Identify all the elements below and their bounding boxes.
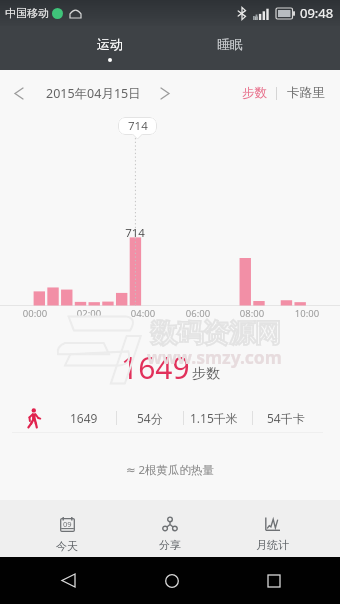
staticText: 714 — [128, 118, 148, 134]
staticText: 08:00 — [232, 307, 272, 320]
staticText: 04:00 — [123, 307, 163, 320]
button[interactable]: Steps — [13, 405, 54, 431]
staticText: 10:00 — [287, 307, 327, 320]
button[interactable]: 步数 — [233, 72, 276, 114]
staticText: 00:00 — [15, 307, 55, 320]
button[interactable]: 分享 — [118, 500, 221, 557]
staticText: 数码资源网 — [151, 317, 281, 350]
button[interactable]: 睡眠 — [199, 26, 260, 70]
staticText: 02:00 — [69, 307, 109, 320]
staticText: 卡路里 — [287, 85, 325, 101]
staticText: 09 — [63, 519, 72, 529]
button[interactable]: Previous day — [0, 72, 37, 114]
button[interactable]: Home — [136, 557, 208, 604]
staticText: ≈ 2根黄瓜的热量 — [0, 462, 340, 478]
staticText: 今天 — [56, 539, 78, 553]
staticText: www.smzy.com — [147, 345, 282, 369]
button[interactable]: 09 — [16, 500, 118, 557]
staticText: 中国移动 — [5, 6, 49, 20]
button[interactable]: 运动 — [79, 26, 140, 70]
staticText: 分享 — [159, 538, 181, 552]
button[interactable]: 月统计 — [221, 500, 324, 557]
staticText: 714 — [118, 225, 152, 241]
button[interactable]: Recents — [208, 557, 340, 604]
staticText: 运动 — [97, 36, 123, 52]
staticText: 月统计 — [256, 538, 289, 552]
staticText: 54千卡 — [267, 410, 305, 426]
staticText: 1649 — [121, 347, 190, 381]
staticText: 09:48 — [300, 4, 334, 22]
button[interactable]: Next day — [153, 72, 176, 114]
button[interactable]: Back — [0, 557, 136, 604]
staticText: 06:00 — [178, 307, 218, 320]
staticText: 步数 — [242, 85, 267, 101]
button[interactable]: 卡路里 — [277, 72, 340, 114]
staticText: 1.15千米 — [190, 410, 238, 426]
staticText: 2015年04月15日 — [46, 85, 141, 102]
staticText: 睡眠 — [217, 36, 243, 52]
staticText: 54分 — [137, 410, 163, 426]
staticText: 步数 — [192, 365, 220, 383]
staticText: 1649 — [70, 410, 98, 426]
